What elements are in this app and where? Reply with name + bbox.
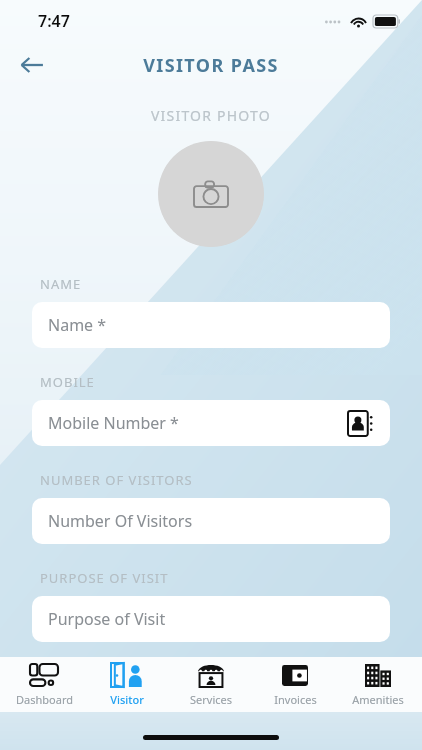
staticText: VISITOR PASS [143,53,279,78]
button[interactable]: Mobile Number * [32,400,390,446]
staticText: Dashboard [16,692,73,707]
button[interactable]: Pick from contacts [346,408,376,438]
button[interactable]: Visitor [87,662,167,707]
staticText: Mobile Number * [48,412,179,434]
staticText: Services [190,692,232,707]
staticText: Name * [48,314,107,336]
button[interactable]: Take visitor photo [158,141,264,247]
staticText: Visitor [110,692,144,707]
staticText: Purpose of Visit [48,608,166,630]
staticText: Number Of Visitors [48,510,193,532]
button[interactable]: Dashboard [4,662,84,707]
staticText: MOBILE [40,373,95,391]
button[interactable]: Name * [32,302,390,348]
staticText: Amenities [352,692,404,707]
staticText: Invoices [274,692,317,707]
button[interactable]: Invoices [255,662,335,707]
button[interactable]: Number Of Visitors [32,498,390,544]
button[interactable]: Purpose of Visit [32,596,390,642]
staticText: NAME [40,275,82,293]
button[interactable]: Services [171,662,251,707]
staticText: VISITOR PHOTO [151,106,271,125]
staticText: 7:47 [38,10,70,32]
staticText: PURPOSE OF VISIT [40,569,169,587]
button[interactable]: Amenities [338,662,418,707]
button[interactable]: Back [10,43,54,87]
staticText: NUMBER OF VISITORS [40,471,193,489]
